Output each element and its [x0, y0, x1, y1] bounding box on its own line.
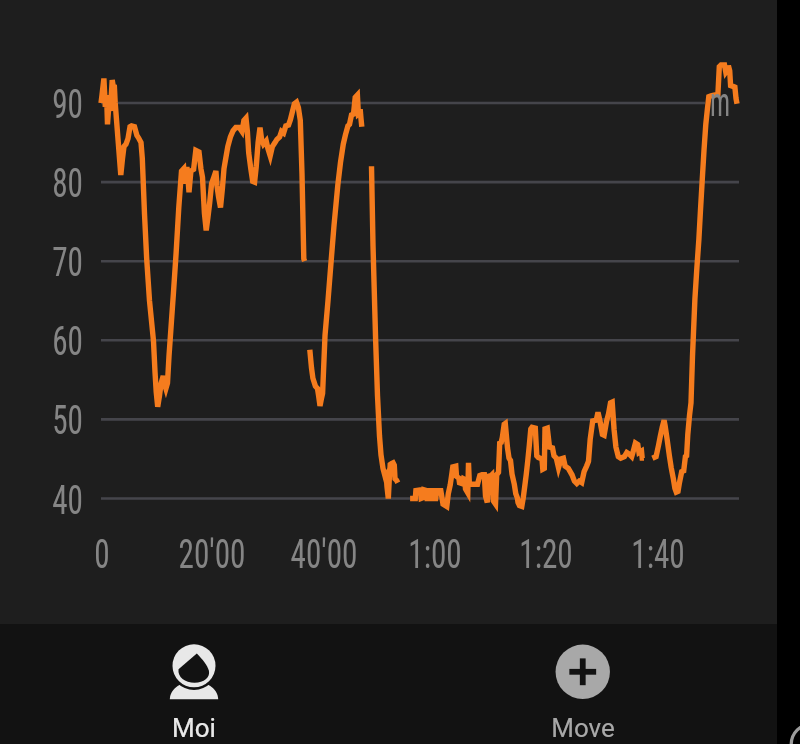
staticText: Moi	[94, 713, 294, 743]
staticText: Move	[483, 713, 683, 743]
staticText: 70	[0, 238, 83, 286]
staticText: 40'00	[256, 530, 392, 578]
staticText: 60	[0, 317, 83, 365]
staticText: m	[710, 78, 730, 126]
staticText: 80	[0, 159, 83, 207]
staticText: 1:20	[478, 530, 614, 578]
staticText: 1:00	[367, 530, 503, 578]
staticText: 50	[0, 396, 83, 444]
staticText: 20'00	[144, 530, 280, 578]
staticText: 0	[34, 530, 170, 578]
staticText: 1:40	[590, 530, 726, 578]
staticText: 40	[0, 476, 83, 524]
button[interactable]: Move	[388, 624, 776, 744]
staticText: 90	[0, 80, 83, 128]
button[interactable]: Moi	[0, 624, 388, 744]
